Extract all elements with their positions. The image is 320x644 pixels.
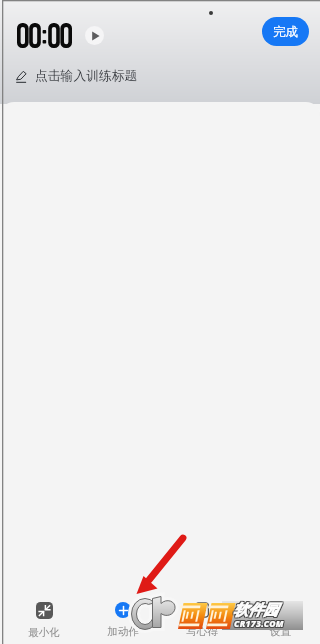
staticText: 软件园 (232, 602, 277, 621)
staticText: CR173.COM (235, 618, 285, 630)
staticText: 软件园 (232, 601, 277, 620)
button[interactable]: Play (85, 26, 104, 45)
staticText: CR173.COM (234, 619, 284, 631)
staticText: 软件园 (234, 600, 279, 619)
staticText: CR173.COM (234, 617, 284, 629)
staticText: 软件园 (232, 600, 277, 619)
staticText: 写心得 (186, 625, 218, 638)
staticText: 设置 (270, 625, 291, 638)
staticText: 完成 (273, 24, 298, 40)
staticText: CR173.COM (233, 618, 283, 630)
staticText: CR173.COM (235, 619, 285, 631)
button[interactable]: Write notes (162, 591, 241, 638)
staticText: 最小化 (28, 626, 60, 639)
button[interactable]: Minimize (5, 591, 83, 639)
staticText: CR173.COM (233, 617, 283, 629)
staticText: CR173.COM (233, 619, 283, 631)
staticText: 软件园 (233, 602, 278, 621)
staticText: 软件园 (233, 601, 278, 620)
staticText: CR173.COM (234, 618, 284, 630)
button[interactable]: Write notes (194, 602, 210, 618)
button[interactable]: Settings (273, 602, 289, 618)
button[interactable]: Minimize (36, 602, 53, 619)
staticText: 软件园 (234, 602, 279, 621)
staticText: 加动作 (107, 625, 139, 638)
button[interactable]: Add action (83, 591, 162, 638)
staticText: CR173.COM (235, 617, 285, 629)
staticText: 点击输入训练标题 (35, 68, 138, 84)
button[interactable]: 点击输入训练标题 (16, 62, 144, 90)
staticText: 软件园 (233, 600, 278, 619)
staticText: 软件园 (234, 601, 279, 620)
button[interactable]: 完成 (262, 17, 309, 46)
button[interactable]: Settings (241, 591, 320, 638)
button[interactable]: Add action (115, 602, 131, 618)
